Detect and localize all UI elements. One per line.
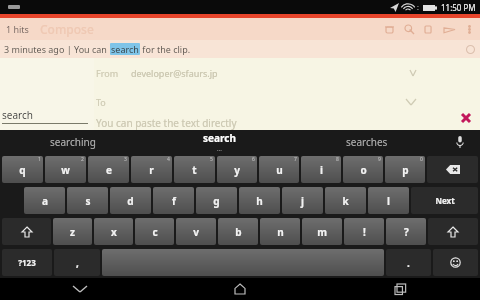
staticText: 5 bbox=[210, 156, 213, 163]
button[interactable]: x bbox=[94, 218, 133, 245]
staticText: d bbox=[127, 194, 134, 208]
button[interactable]: l bbox=[368, 187, 409, 214]
button[interactable]: t bbox=[174, 156, 215, 183]
button[interactable]: n bbox=[260, 218, 300, 245]
staticText: ... bbox=[217, 145, 222, 153]
staticText: Compose bbox=[40, 21, 94, 37]
button[interactable]: search bbox=[146, 130, 293, 154]
button[interactable]: g bbox=[196, 187, 237, 214]
staticText: ? bbox=[404, 225, 409, 239]
staticText: : bbox=[417, 3, 419, 13]
staticText: j bbox=[301, 194, 304, 208]
staticText: ?123 bbox=[18, 257, 36, 268]
button[interactable]: Recent apps bbox=[320, 278, 480, 300]
button[interactable]: ! bbox=[344, 218, 384, 245]
button[interactable]: ?123 bbox=[2, 249, 52, 276]
staticText: e bbox=[106, 163, 112, 177]
staticText: 6 bbox=[252, 156, 255, 163]
button[interactable]: w bbox=[45, 156, 86, 183]
button[interactable]: Emoji bbox=[433, 249, 478, 276]
button[interactable]: e bbox=[88, 156, 129, 183]
staticText: v bbox=[193, 225, 199, 239]
staticText: 1 bbox=[38, 156, 41, 163]
button[interactable]: p bbox=[385, 156, 425, 183]
staticText: y bbox=[234, 163, 240, 177]
button[interactable]: Info bbox=[466, 45, 475, 54]
button[interactable]: Delete bbox=[383, 23, 396, 36]
staticText: 0 bbox=[420, 156, 423, 163]
button[interactable]: z bbox=[53, 218, 92, 245]
staticText: searching bbox=[50, 135, 96, 149]
button[interactable]: Close search bbox=[460, 112, 472, 124]
button[interactable]: More bbox=[463, 23, 476, 36]
button[interactable]: ? bbox=[386, 218, 426, 245]
button[interactable]: a bbox=[24, 187, 65, 214]
button[interactable]: i bbox=[301, 156, 341, 183]
button[interactable]: s bbox=[67, 187, 108, 214]
staticText: z bbox=[70, 225, 75, 239]
staticText: o bbox=[360, 163, 367, 177]
button[interactable]: Home bbox=[160, 278, 320, 300]
button[interactable]: d bbox=[110, 187, 151, 214]
button[interactable]: Voice input bbox=[440, 130, 480, 154]
staticText: 11:50 PM bbox=[441, 2, 476, 13]
staticText: searches bbox=[346, 135, 388, 149]
staticText: s bbox=[85, 194, 91, 208]
staticText: search bbox=[2, 108, 33, 122]
staticText: search bbox=[203, 131, 236, 145]
button[interactable]: , bbox=[54, 249, 100, 276]
button[interactable]: u bbox=[259, 156, 299, 183]
staticText: To bbox=[96, 96, 106, 108]
staticText: ! bbox=[363, 225, 366, 239]
button[interactable]: Attach bbox=[423, 23, 436, 36]
button[interactable]: v bbox=[176, 218, 216, 245]
staticText: p bbox=[402, 163, 409, 177]
staticText: 3 bbox=[124, 156, 127, 163]
button[interactable]: Shift bbox=[2, 218, 51, 245]
staticText: 9 bbox=[378, 156, 381, 163]
button[interactable]: . bbox=[386, 249, 431, 276]
button[interactable]: Search bbox=[403, 23, 416, 36]
staticText: b bbox=[235, 225, 242, 239]
button[interactable]: f bbox=[153, 187, 194, 214]
button[interactable]: Backspace bbox=[427, 156, 478, 183]
staticText: n bbox=[277, 225, 284, 239]
staticText: k bbox=[342, 194, 349, 208]
button[interactable]: q bbox=[2, 156, 43, 183]
button[interactable]: Send bbox=[443, 23, 456, 36]
button[interactable]: j bbox=[282, 187, 323, 214]
staticText: c bbox=[152, 225, 158, 239]
staticText: x bbox=[111, 225, 117, 239]
button[interactable]: o bbox=[343, 156, 383, 183]
staticText: You can paste the text directly bbox=[96, 116, 237, 130]
staticText: Next bbox=[435, 195, 455, 206]
button[interactable]: Space bbox=[102, 249, 384, 276]
staticText: i bbox=[320, 163, 323, 177]
button[interactable]: Shift bbox=[428, 218, 478, 245]
staticText: a bbox=[42, 194, 48, 208]
staticText: m bbox=[317, 225, 327, 239]
button[interactable]: Hide keyboard bbox=[0, 278, 160, 300]
staticText: h bbox=[256, 194, 263, 208]
button[interactable]: m bbox=[302, 218, 342, 245]
staticText: q bbox=[19, 163, 26, 177]
staticText: r bbox=[149, 163, 154, 177]
staticText: 4 bbox=[167, 156, 170, 163]
staticText: w bbox=[61, 163, 70, 177]
button[interactable]: searches bbox=[293, 130, 440, 154]
button[interactable]: y bbox=[217, 156, 257, 183]
button[interactable]: r bbox=[131, 156, 172, 183]
button[interactable]: h bbox=[239, 187, 280, 214]
button[interactable]: b bbox=[218, 218, 258, 245]
button[interactable]: c bbox=[135, 218, 174, 245]
button[interactable]: Next bbox=[411, 187, 478, 214]
staticText: 7 bbox=[294, 156, 297, 163]
staticText: 2 bbox=[81, 156, 84, 163]
staticText: u bbox=[276, 163, 283, 177]
staticText: search bbox=[111, 43, 139, 55]
staticText: From bbox=[96, 67, 119, 79]
staticText: for the clip. bbox=[140, 43, 191, 55]
button[interactable]: k bbox=[325, 187, 366, 214]
button[interactable]: searching bbox=[0, 130, 146, 154]
staticText: developer@sfaurs.jp bbox=[131, 67, 218, 79]
